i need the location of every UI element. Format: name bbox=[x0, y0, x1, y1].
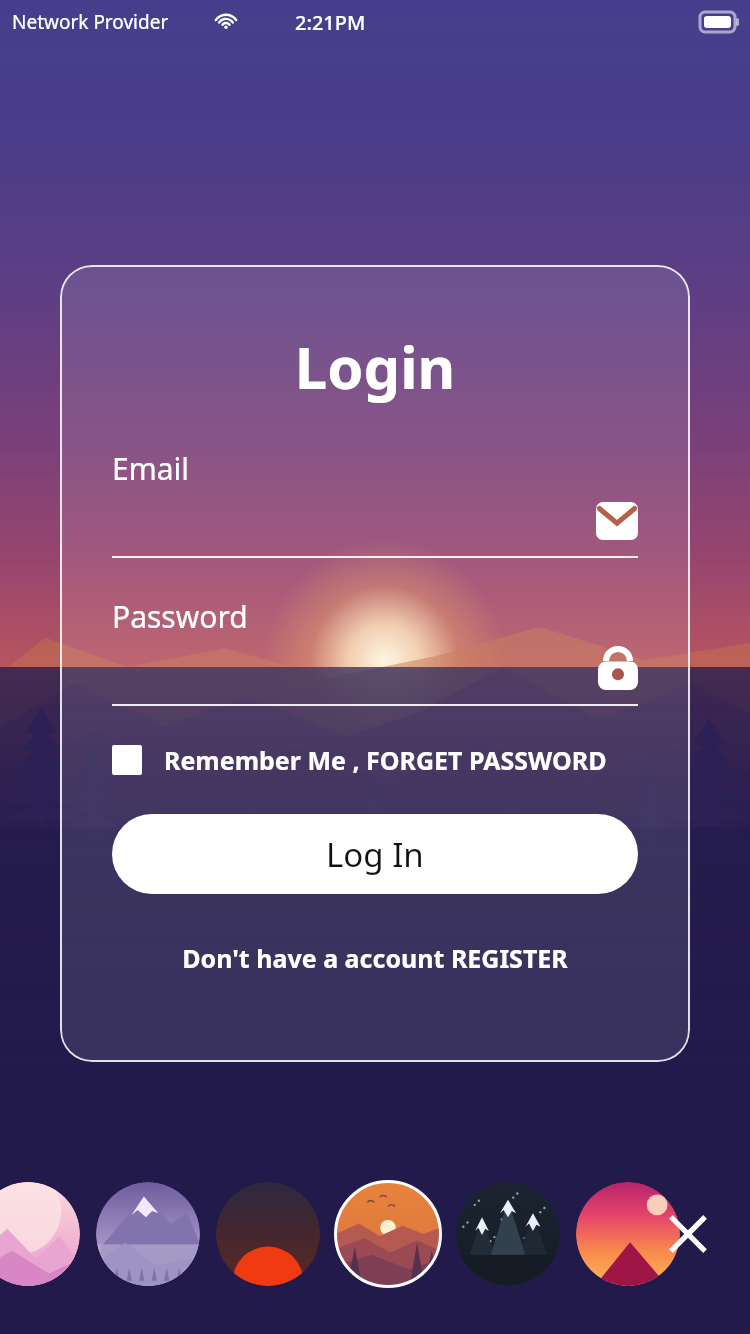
button[interactable]: Wallpaper 5 bbox=[456, 1182, 560, 1286]
staticText: Network Provider bbox=[12, 9, 169, 35]
button[interactable]: Close bbox=[656, 1202, 720, 1266]
button[interactable]: Wallpaper 3 bbox=[216, 1182, 320, 1286]
staticText: Don't have a account REGISTER bbox=[182, 941, 568, 975]
staticText: Log In bbox=[326, 832, 424, 877]
button[interactable]: Wallpaper 6 bbox=[576, 1182, 680, 1286]
button[interactable]: Remember Me , FORGET PASSWORD bbox=[112, 738, 638, 782]
button[interactable]: Log In bbox=[112, 814, 638, 894]
button[interactable]: Password bbox=[112, 596, 638, 706]
button[interactable]: Wallpaper 1 bbox=[0, 1182, 80, 1286]
button[interactable]: Wallpaper 4 bbox=[336, 1182, 440, 1286]
staticText: Password bbox=[112, 596, 248, 637]
button[interactable]: Wallpaper 2 bbox=[96, 1182, 200, 1286]
staticText: Login bbox=[60, 327, 690, 406]
staticText: 2:21PM bbox=[295, 9, 366, 36]
button[interactable]: Don't have a account REGISTER bbox=[60, 938, 690, 978]
staticText: Email bbox=[112, 448, 190, 489]
staticText: Remember Me , FORGET PASSWORD bbox=[164, 743, 607, 777]
button[interactable]: Email bbox=[112, 448, 638, 558]
